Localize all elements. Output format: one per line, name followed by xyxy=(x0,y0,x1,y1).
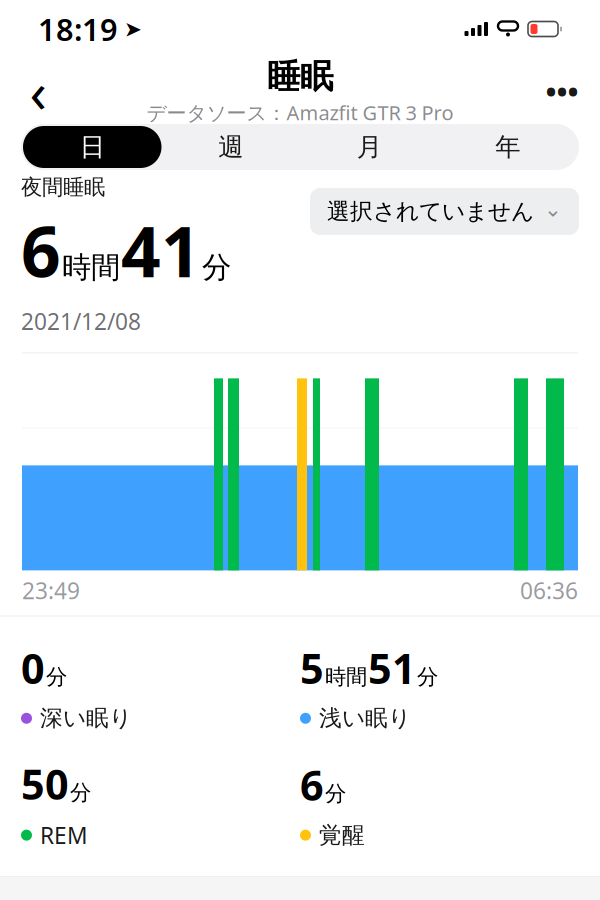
staticText: 週 xyxy=(218,131,243,162)
staticText: ⌄ xyxy=(544,197,562,221)
staticText: ➤ xyxy=(124,17,142,41)
staticText: 6 xyxy=(21,204,61,296)
staticText: ‹ xyxy=(29,54,46,128)
staticText: 夜間睡眠 xyxy=(21,174,105,200)
staticText: データソース：Amazfit GTR 3 Pro xyxy=(146,99,453,126)
staticText: 分 xyxy=(70,779,91,806)
button[interactable]: 年 xyxy=(438,126,577,168)
button[interactable]: Back xyxy=(10,63,66,119)
staticText: 分 xyxy=(417,664,438,690)
staticText: 分 xyxy=(325,781,346,807)
staticText: 18:19 xyxy=(38,9,118,49)
staticText: 41 xyxy=(121,204,201,296)
button[interactable]: 日 xyxy=(23,126,161,168)
staticText: 深い眠り xyxy=(40,704,132,732)
staticText: 23:49 xyxy=(22,575,80,605)
staticText: 分 xyxy=(46,664,67,690)
staticText: 50 xyxy=(21,756,69,811)
staticText: 51 xyxy=(368,640,416,695)
staticText: 6 xyxy=(300,757,324,812)
button[interactable]: 選択されていません xyxy=(310,188,579,235)
staticText: 時間 xyxy=(62,249,120,285)
staticText: 06:36 xyxy=(520,575,578,605)
staticText: 覚醒 xyxy=(319,821,365,849)
staticText: 年 xyxy=(495,131,520,162)
staticText: 0 xyxy=(21,640,45,695)
button[interactable]: 月 xyxy=(300,126,438,168)
button[interactable]: More options xyxy=(534,63,590,119)
staticText: ••• xyxy=(545,71,578,110)
staticText: 睡眠 xyxy=(267,56,333,97)
staticText: 分 xyxy=(202,249,231,285)
staticText: 浅い眠り xyxy=(319,704,411,732)
staticText: 5 xyxy=(300,640,324,695)
staticText: REM xyxy=(40,820,88,850)
staticText: 2021/12/08 xyxy=(21,306,141,336)
staticText: 月 xyxy=(357,131,382,162)
staticText: 日 xyxy=(80,131,105,162)
staticText: 選択されていません xyxy=(327,198,534,225)
button[interactable]: 週 xyxy=(161,126,300,168)
staticText: 時間 xyxy=(325,664,367,690)
